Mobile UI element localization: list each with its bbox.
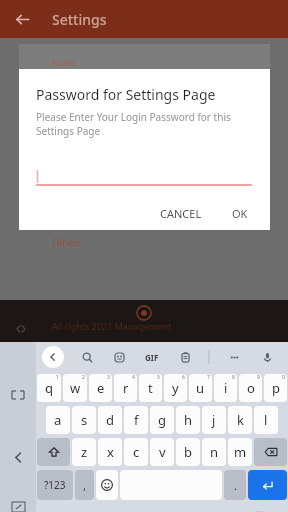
staticText: 8 xyxy=(232,374,235,381)
button[interactable]: Clipboard xyxy=(176,348,194,366)
staticText: k xyxy=(237,411,244,429)
staticText: q xyxy=(45,379,53,397)
staticText: w xyxy=(70,379,81,397)
button[interactable]: OK xyxy=(224,200,256,227)
staticText: i xyxy=(224,379,228,397)
button[interactable]: c xyxy=(124,438,148,466)
staticText: All rights 2021 Management xyxy=(52,320,172,332)
staticText: z xyxy=(81,443,88,461)
staticText: c xyxy=(133,443,140,461)
button[interactable]: h xyxy=(176,406,200,434)
staticText: 0 xyxy=(282,374,285,381)
staticText: t xyxy=(148,379,153,397)
staticText: m xyxy=(234,443,247,461)
staticText: 3 xyxy=(107,374,110,381)
button[interactable]: Shift xyxy=(37,438,70,466)
button[interactable]: Search xyxy=(78,348,96,366)
staticText: b xyxy=(184,443,192,461)
button[interactable]: d xyxy=(98,406,122,434)
button[interactable]: g xyxy=(150,406,174,434)
button[interactable]: Stickers xyxy=(110,348,128,366)
staticText: v xyxy=(159,443,166,461)
staticText: n xyxy=(210,443,219,461)
staticText: ?123 xyxy=(44,478,66,492)
staticText: a xyxy=(54,411,62,429)
button[interactable]: w xyxy=(63,374,87,402)
button[interactable]: i xyxy=(214,374,237,402)
staticText: f xyxy=(134,411,139,429)
button[interactable]: n xyxy=(202,438,226,466)
button[interactable]: m xyxy=(228,438,252,466)
button[interactable]: x xyxy=(98,438,122,466)
staticText: 1 xyxy=(56,374,59,381)
staticText: 7 xyxy=(207,374,210,381)
button[interactable]: y xyxy=(164,374,187,402)
button[interactable]: v xyxy=(150,438,174,466)
staticText: 9 xyxy=(257,374,260,381)
button[interactable]: f xyxy=(124,406,148,434)
staticText: Kiosk xyxy=(52,56,75,68)
button[interactable]: k xyxy=(228,406,252,434)
staticText: x xyxy=(107,443,114,461)
button[interactable]: Emoji xyxy=(96,470,118,500)
staticText: u xyxy=(196,379,205,397)
staticText: y xyxy=(172,379,179,397)
button[interactable]: Period xyxy=(224,470,246,500)
staticText: 4 xyxy=(132,374,135,381)
staticText: CANCEL xyxy=(160,206,202,221)
button[interactable]: GIF xyxy=(143,348,161,366)
staticText: o xyxy=(247,379,255,397)
staticText: 5 xyxy=(157,374,160,381)
staticText: g xyxy=(158,411,166,429)
button[interactable]: z xyxy=(72,438,96,466)
button[interactable]: l xyxy=(254,406,278,434)
button[interactable]: ?123 xyxy=(37,470,73,500)
staticText: s xyxy=(81,411,88,429)
staticText: h xyxy=(184,411,193,429)
staticText: d xyxy=(106,411,114,429)
button[interactable]: CANCEL xyxy=(152,200,210,227)
button[interactable]: Voice input xyxy=(258,348,276,366)
button[interactable]: Back xyxy=(7,446,29,468)
button[interactable]: s xyxy=(72,406,96,434)
button[interactable]: p xyxy=(264,374,287,402)
staticText: Others xyxy=(52,236,81,248)
staticText: l xyxy=(264,411,268,429)
button[interactable]: Expand xyxy=(7,384,29,406)
button[interactable]: a xyxy=(46,406,70,434)
staticText: GIF xyxy=(145,352,159,363)
staticText: e xyxy=(97,379,105,397)
staticText: . xyxy=(234,478,237,493)
button[interactable]: e xyxy=(89,374,112,402)
button[interactable]: q xyxy=(37,374,61,402)
staticText: , xyxy=(83,478,86,493)
button[interactable]: More options xyxy=(225,348,243,366)
button[interactable]: j xyxy=(202,406,226,434)
staticText: p xyxy=(272,379,280,397)
button[interactable]: o xyxy=(239,374,262,402)
staticText: Settings xyxy=(52,10,107,29)
staticText: r xyxy=(123,379,129,397)
button[interactable]: b xyxy=(176,438,200,466)
staticText: j xyxy=(212,411,216,429)
staticText: Please Enter Your Login Password for thi… xyxy=(36,110,256,138)
staticText: 2 xyxy=(82,374,85,381)
button[interactable]: Comma xyxy=(75,470,94,500)
button[interactable]: u xyxy=(189,374,212,402)
staticText: 6 xyxy=(182,374,185,381)
button[interactable]: Back xyxy=(8,5,36,33)
button[interactable]: Enter xyxy=(248,470,287,500)
button[interactable]: t xyxy=(139,374,162,402)
staticText: Password for Settings Page xyxy=(36,85,216,104)
button[interactable]: Backspace xyxy=(254,438,287,466)
staticText: OK xyxy=(232,206,248,221)
button[interactable]: r xyxy=(114,374,137,402)
button[interactable] xyxy=(36,164,256,186)
button[interactable]: Screenshot xyxy=(7,502,29,512)
button[interactable]: Close toolbar xyxy=(42,346,64,368)
